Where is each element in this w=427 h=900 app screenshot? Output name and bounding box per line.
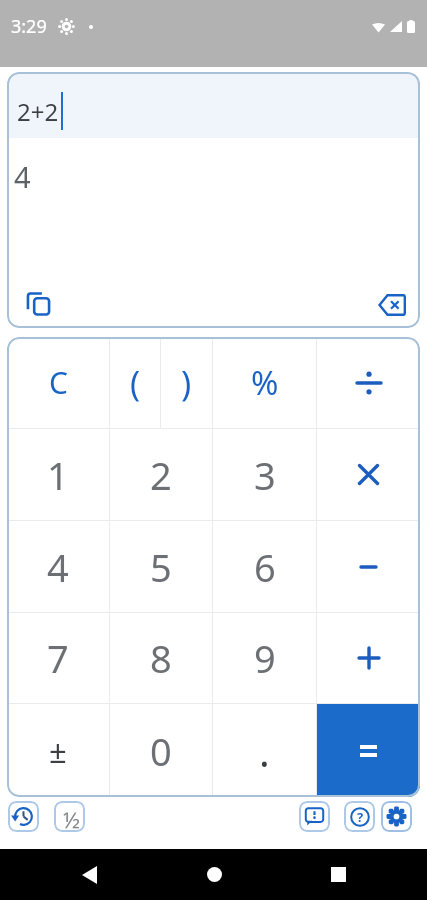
button[interactable] (317, 613, 420, 703)
staticText: ½ (63, 804, 80, 832)
staticText: 3 (254, 449, 276, 501)
button[interactable]: . (213, 704, 316, 797)
button[interactable] (317, 429, 420, 520)
button[interactable] (207, 867, 222, 882)
staticText: 9 (254, 632, 276, 684)
staticText: 8 (150, 632, 172, 684)
button[interactable]: ? (344, 801, 375, 832)
button[interactable]: ) (161, 337, 212, 428)
staticText: 4 (47, 541, 69, 593)
button[interactable] (317, 521, 420, 612)
staticText: 1 (47, 449, 69, 501)
button[interactable] (381, 801, 412, 832)
button[interactable]: 9 (213, 613, 316, 703)
staticText: 3:29 (11, 14, 47, 39)
button[interactable]: 2 (110, 429, 212, 520)
button[interactable]: 4 (7, 521, 109, 612)
button[interactable] (317, 704, 420, 797)
staticText: % (251, 360, 279, 405)
button[interactable]: 5 (110, 521, 212, 612)
button[interactable]: % (213, 337, 316, 428)
staticText: 4 (14, 157, 31, 196)
button[interactable] (378, 294, 406, 316)
button[interactable]: 6 (213, 521, 316, 612)
staticText: 7 (47, 632, 69, 684)
button[interactable] (317, 337, 420, 428)
staticText: ( (130, 360, 141, 406)
button[interactable]: ± (7, 704, 109, 797)
staticText: 6 (254, 541, 276, 593)
staticText: 0 (150, 725, 172, 777)
staticText: 2+2 (17, 95, 59, 128)
staticText: ? (357, 808, 364, 826)
staticText: 2 (150, 449, 172, 501)
staticText: . (259, 724, 270, 778)
button[interactable] (82, 866, 97, 884)
button[interactable] (299, 801, 330, 832)
button[interactable]: 8 (110, 613, 212, 703)
button[interactable]: 0 (110, 704, 212, 797)
button[interactable]: 2+2 (7, 72, 420, 138)
button[interactable]: ½ (54, 801, 85, 832)
button[interactable]: 1 (7, 429, 109, 520)
button[interactable]: C (7, 337, 109, 428)
button[interactable]: ( (110, 337, 160, 428)
staticText: ) (181, 360, 192, 406)
button[interactable] (27, 292, 51, 316)
staticText: 5 (150, 541, 172, 593)
staticText: ± (49, 730, 67, 772)
button[interactable]: 7 (7, 613, 109, 703)
button[interactable]: 3 (213, 429, 316, 520)
staticText: C (49, 362, 68, 403)
button[interactable] (8, 801, 39, 832)
